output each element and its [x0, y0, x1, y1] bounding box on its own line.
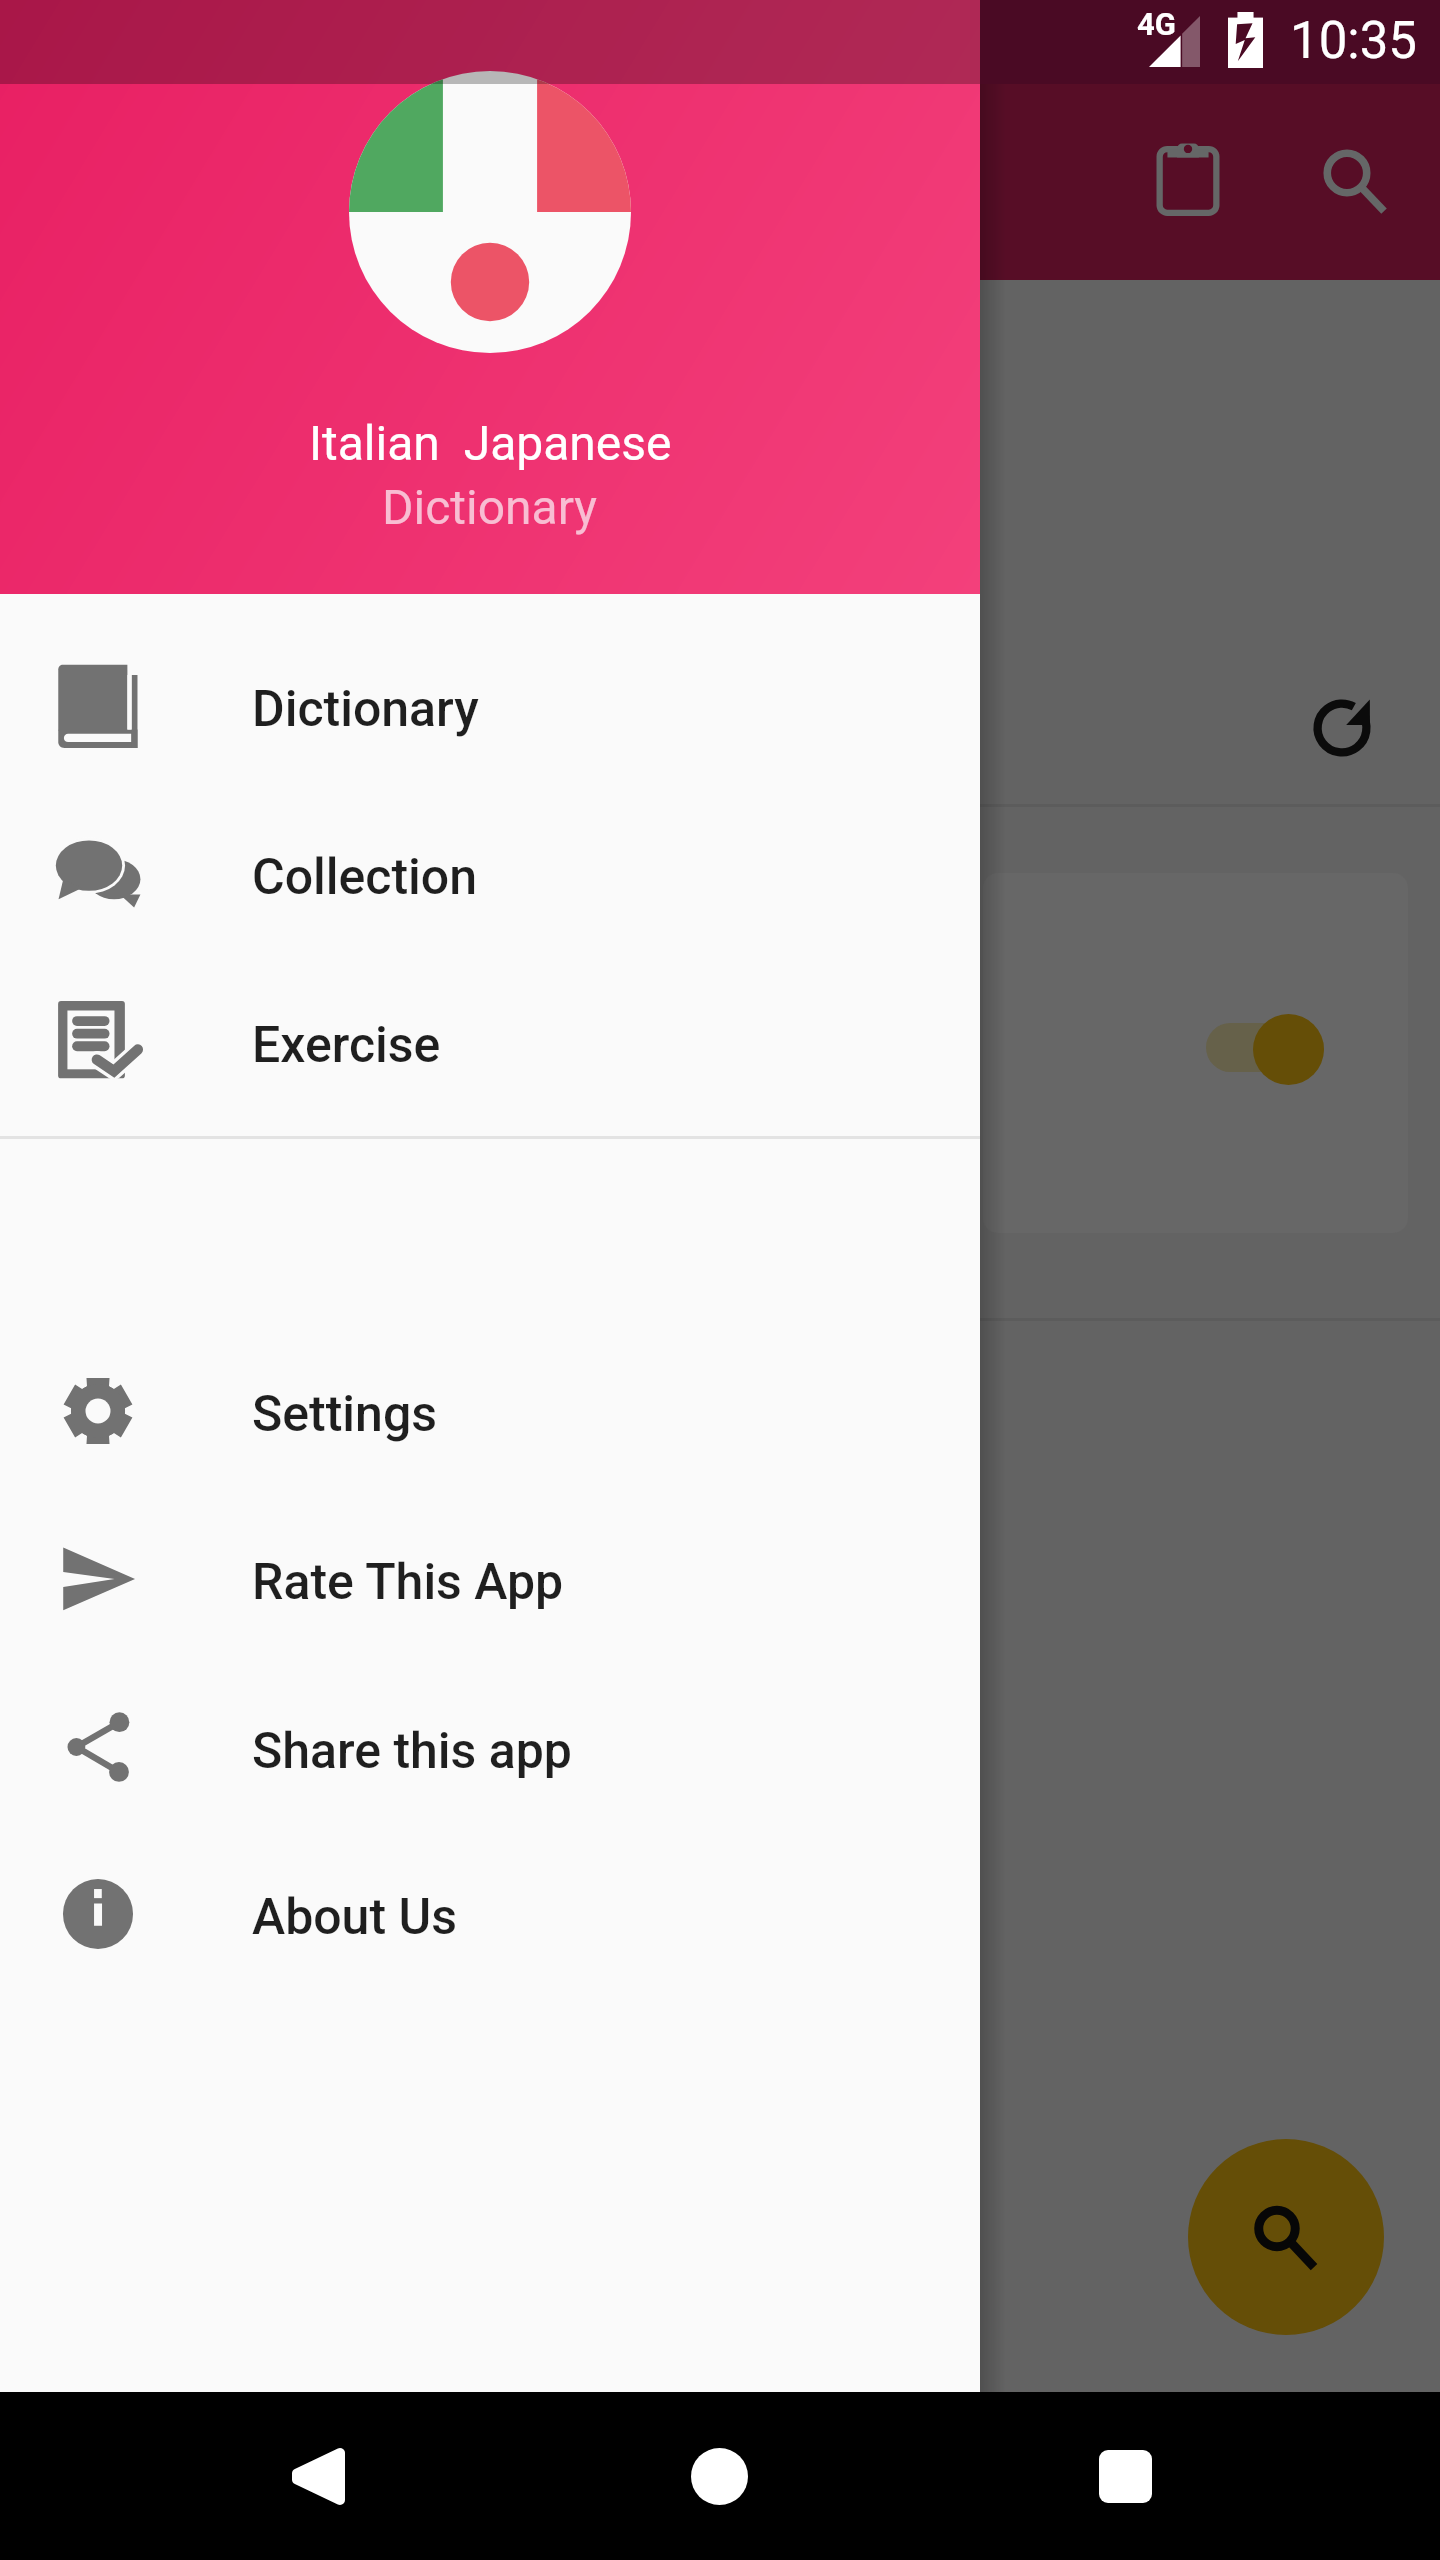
staticText: Exercise [252, 1016, 441, 1075]
staticText: Italian Japanese [309, 415, 672, 471]
button[interactable]: Exercise [0, 958, 980, 1126]
button[interactable]: Collection [0, 790, 980, 958]
staticText: 10:35 [1290, 11, 1418, 71]
button[interactable]: Toggle [1253, 1014, 1324, 1085]
staticText: About Us [252, 1888, 457, 1947]
staticText: 4G [1137, 6, 1176, 42]
button[interactable]: Search [1265, 94, 1433, 262]
button[interactable]: Home [635, 2392, 803, 2560]
staticText: Settings [252, 1385, 438, 1444]
staticText: Rate This App [252, 1553, 564, 1612]
button[interactable]: Search [1188, 2139, 1384, 2335]
button[interactable]: Back [231, 2392, 399, 2560]
button[interactable]: Settings [0, 1327, 980, 1495]
staticText: Share this app [252, 1722, 572, 1781]
button[interactable]: Recents [1041, 2392, 1209, 2560]
staticText: Dictionary [382, 479, 598, 535]
button[interactable]: Clipboard [1104, 97, 1272, 265]
button[interactable]: About Us [0, 1830, 980, 1998]
staticText: Collection [252, 848, 477, 907]
staticText: Dictionary [252, 680, 479, 739]
button[interactable]: Rate This App [0, 1495, 980, 1663]
button[interactable]: Share this app [0, 1664, 980, 1832]
button[interactable]: Refresh [1282, 668, 1402, 788]
button[interactable]: Dictionary [0, 622, 980, 790]
